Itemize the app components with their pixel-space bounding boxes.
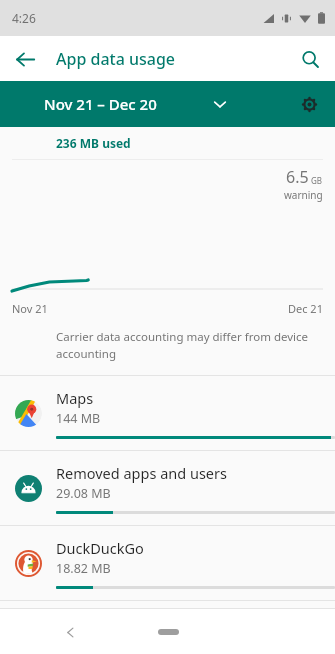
staticText: 236 MB used (56, 135, 131, 151)
button[interactable]: DuckDuckGo (0, 526, 335, 600)
staticText: 4:26 (12, 10, 36, 26)
button[interactable]: Back (54, 616, 86, 648)
button[interactable]: Search (291, 40, 329, 78)
staticText: Nov 21 (12, 301, 48, 316)
staticText: Carrier data accounting may differ from … (56, 329, 315, 361)
staticText: Removed apps and users (56, 463, 227, 483)
button[interactable]: Nov 21 – Dec 20 (44, 94, 227, 114)
button[interactable]: Removed apps and users (0, 451, 335, 525)
staticText: App data usage (56, 48, 176, 70)
staticText: Dec 21 (288, 301, 323, 316)
button[interactable]: Home (146, 619, 190, 645)
staticText: 18.82 MB (56, 560, 111, 577)
staticText: 29.08 MB (56, 485, 111, 502)
staticText: 144 MB (56, 410, 101, 427)
button[interactable]: Settings (291, 86, 327, 122)
staticText: Maps (56, 388, 94, 408)
staticText: warning (284, 188, 323, 202)
staticText: GB (311, 175, 323, 186)
staticText: DuckDuckGo (56, 538, 144, 558)
staticText: Nov 21 – Dec 20 (44, 94, 157, 114)
button[interactable]: Back (6, 40, 44, 78)
staticText: 6.5 (286, 166, 309, 188)
button[interactable]: Maps (0, 376, 335, 450)
